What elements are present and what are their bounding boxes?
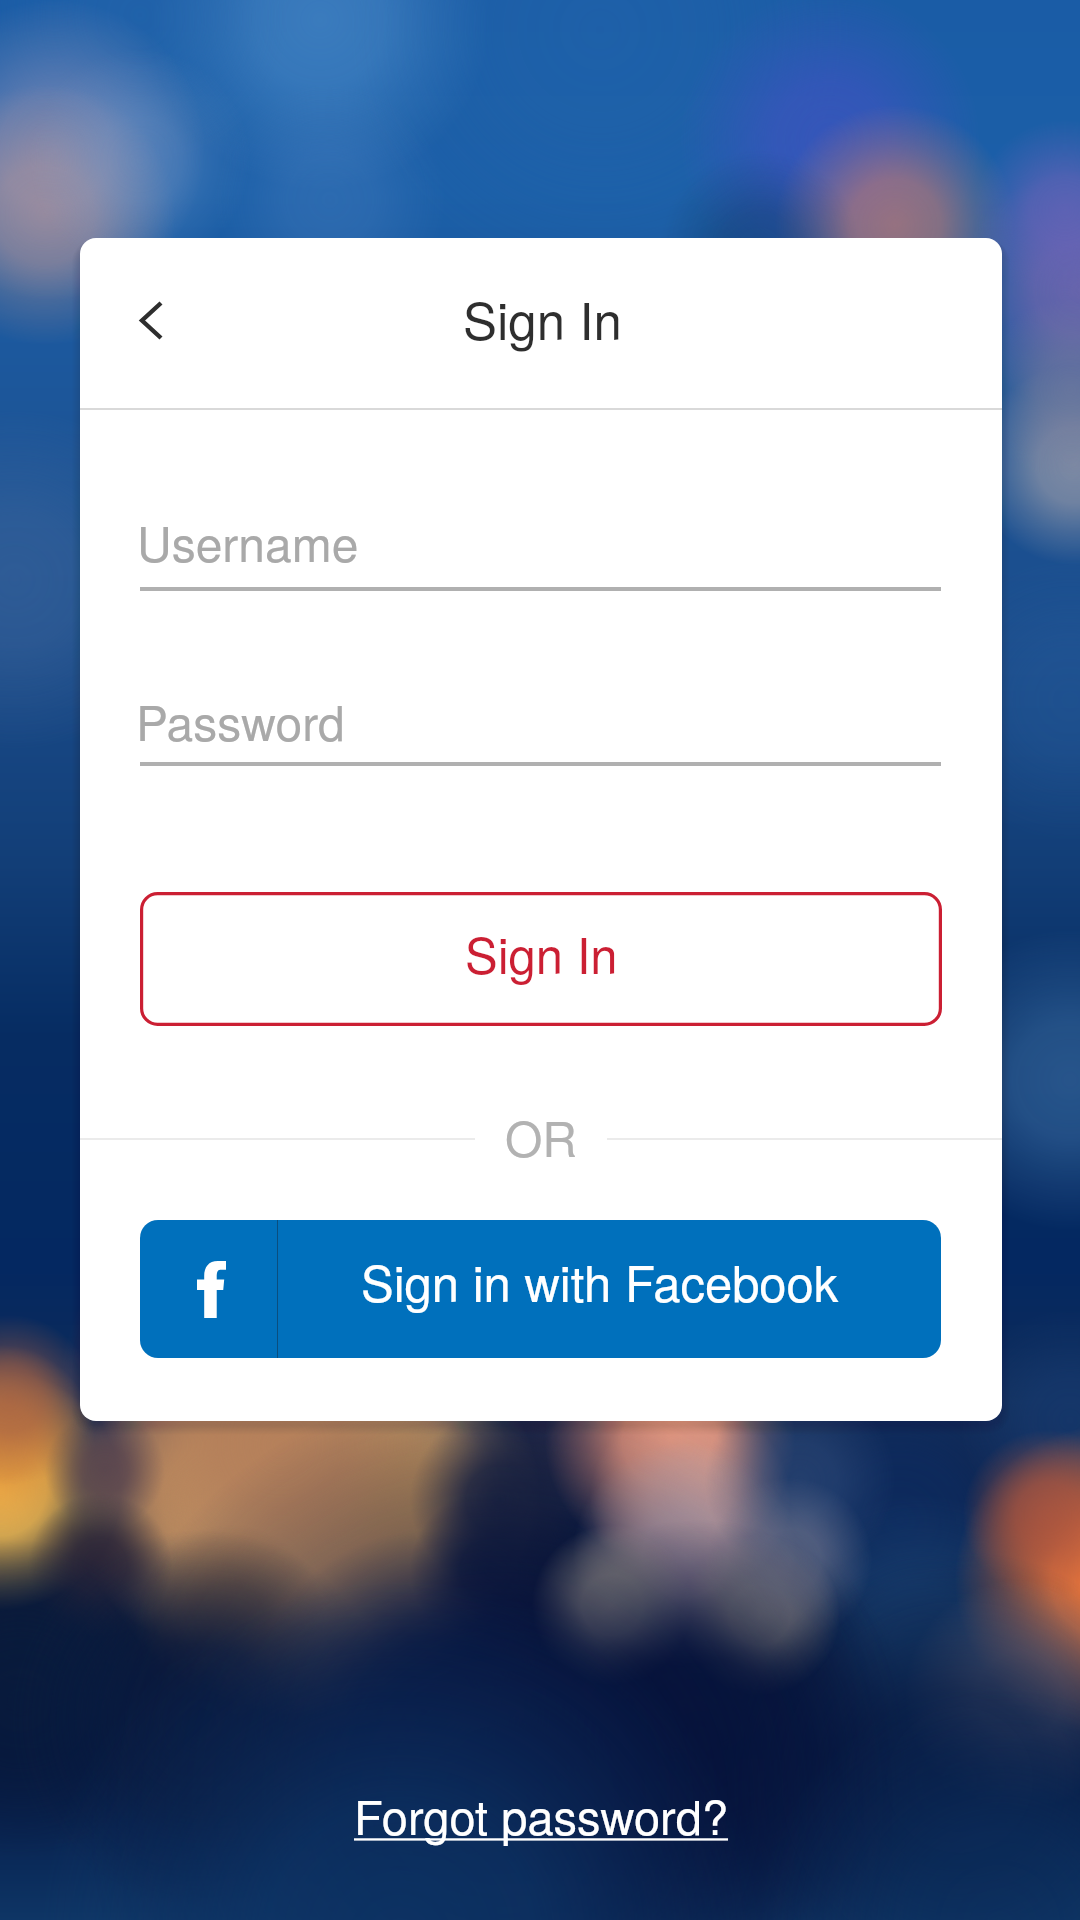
staticText: Sign in with Facebook	[361, 1246, 839, 1316]
button[interactable]: Sign in with Facebook	[140, 1220, 941, 1358]
staticText: Username	[137, 507, 359, 576]
staticText: Sign In	[463, 281, 622, 354]
staticText: OR	[505, 1102, 578, 1168]
button[interactable]: Sign In	[140, 892, 942, 1026]
staticText: Password	[136, 686, 345, 755]
staticText: Sign In	[465, 918, 618, 988]
button[interactable]: Forgot password?	[354, 1781, 729, 1848]
button[interactable]: Back	[101, 270, 201, 370]
staticText: Forgot password?	[354, 1781, 729, 1848]
